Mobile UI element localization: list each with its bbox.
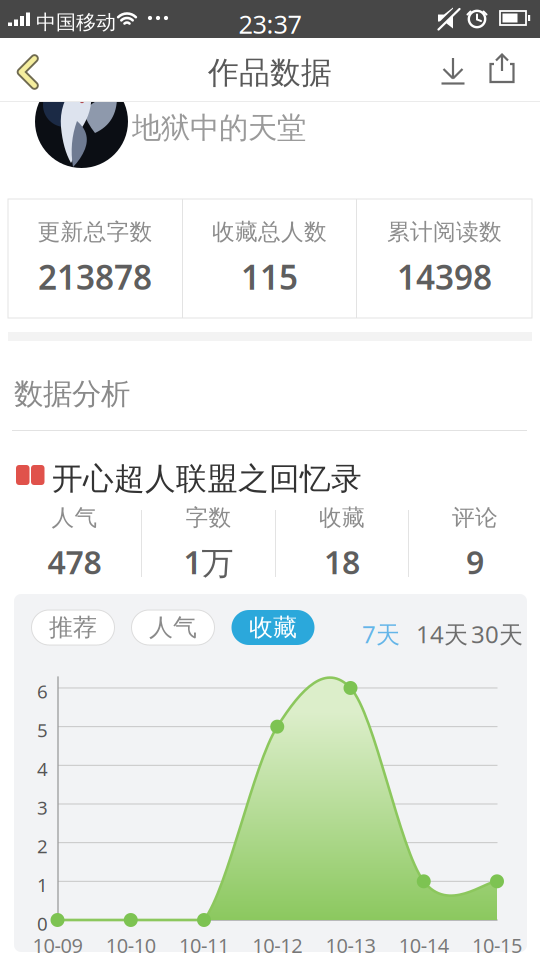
staticText: 人气 [149,613,197,642]
staticText: 10-13 [325,932,375,959]
button[interactable]: Download [436,54,470,88]
staticText: 10-12 [252,932,302,959]
button[interactable]: 收藏 [231,610,314,645]
staticText: 4 [37,756,48,781]
staticText: 10-09 [32,932,82,959]
staticText: 3 [37,795,48,820]
button[interactable]: 7天 [362,618,400,650]
button[interactable]: Back [0,38,56,101]
staticText: 字数 [185,504,231,532]
staticText: 1万 [183,541,233,583]
staticText: 收藏 [319,504,365,532]
staticText: 10-10 [106,932,156,959]
staticText: 18 [324,541,360,583]
staticText: 115 [241,255,298,299]
staticText: 30天 [471,618,523,650]
button[interactable]: Share [486,52,518,86]
staticText: 更新总字数 [37,218,152,246]
staticText: 累计阅读数 [387,218,502,246]
staticText: 5 [37,718,48,742]
staticText: 10-11 [179,932,229,959]
staticText: 213878 [38,255,152,299]
staticText: 开心超人联盟之回忆录 [52,460,362,498]
button[interactable]: 30天 [471,618,523,650]
staticText: 9 [466,541,484,583]
staticText: 10-15 [472,932,522,959]
staticText: 0 [37,911,48,936]
staticText: 14天 [416,618,468,650]
button[interactable]: 14天 [416,618,468,650]
staticText: 数据分析 [14,376,130,412]
button[interactable]: 人气 [131,610,214,645]
staticText: 人气 [51,504,97,532]
button[interactable]: 推荐 [31,610,114,645]
staticText: 收藏 [249,613,297,642]
staticText: 作品数据 [208,54,332,92]
staticText: 推荐 [49,613,97,642]
staticText: 地狱中的天堂 [132,110,306,146]
staticText: 中国移动 [36,10,116,35]
staticText: 2 [37,834,48,858]
staticText: 7天 [362,618,400,650]
staticText: 6 [37,679,48,704]
staticText: 评论 [452,504,498,532]
staticText: 10-14 [399,932,449,959]
staticText: 收藏总人数 [212,218,327,246]
staticText: 14398 [397,255,492,299]
staticText: 23:37 [238,7,301,41]
staticText: 478 [47,541,101,583]
staticText: 1 [37,872,48,897]
